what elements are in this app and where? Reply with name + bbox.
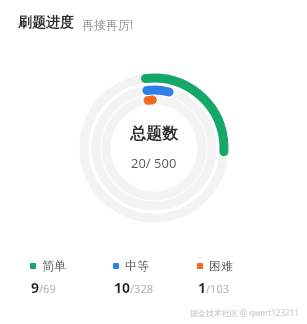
- staticText: 再接再厉!: [82, 16, 134, 32]
- staticText: 简单: [42, 258, 66, 273]
- staticText: 中等: [125, 258, 149, 273]
- staticText: 9/69: [31, 278, 56, 297]
- staticText: 掘金技术社区 @ qwert123211: [190, 307, 299, 318]
- staticText: 1/103: [198, 278, 229, 297]
- button[interactable]: 简单: [30, 258, 113, 297]
- staticText: 10/328: [114, 278, 153, 297]
- staticText: 20/ 500: [131, 154, 177, 172]
- staticText: 刷题进度: [18, 14, 74, 32]
- staticText: 困难: [209, 258, 233, 273]
- button[interactable]: 刷题进度: [18, 14, 134, 32]
- button[interactable]: 中等: [113, 258, 197, 297]
- other: 中等: [113, 263, 119, 269]
- other: 简单: [30, 263, 36, 269]
- staticText: 总题数: [130, 124, 178, 144]
- button[interactable]: 困难: [197, 258, 281, 297]
- other: 困难: [197, 263, 203, 269]
